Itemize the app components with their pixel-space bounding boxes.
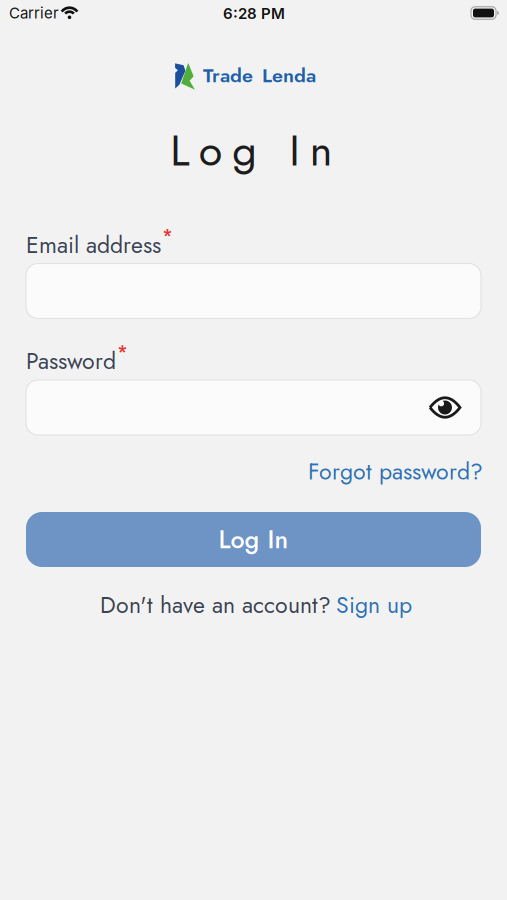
staticText: Forgot password? (308, 455, 483, 488)
staticText: Sign up (336, 588, 412, 622)
staticText: * (117, 339, 127, 363)
button[interactable]: Show password (428, 396, 461, 418)
staticText: Log In (170, 119, 333, 182)
button[interactable]: Log In (26, 512, 481, 567)
button[interactable]: Password (26, 380, 481, 435)
staticText: Password (26, 344, 116, 378)
staticText: Log In (218, 521, 288, 557)
staticText: Carrier (9, 4, 59, 22)
staticText: Email address (26, 228, 161, 261)
staticText: Don't have an account? (100, 588, 331, 622)
staticText: Lenda (262, 61, 316, 89)
staticText: 6:28 PM (223, 4, 285, 23)
button[interactable]: Sign up (336, 588, 412, 622)
staticText: Trade (203, 61, 253, 89)
button[interactable]: Forgot password? (308, 455, 483, 488)
staticText: * (162, 223, 172, 247)
